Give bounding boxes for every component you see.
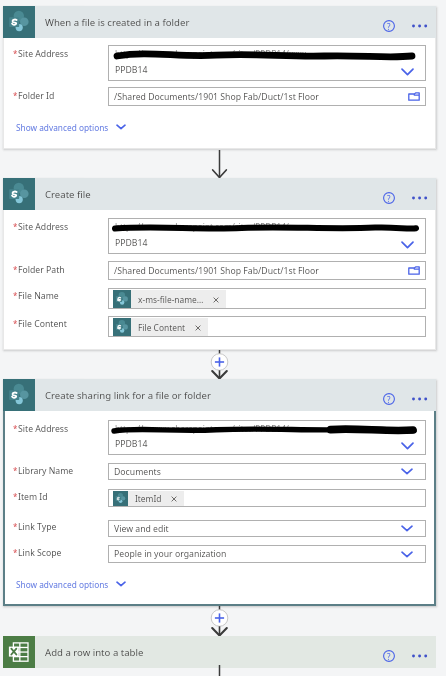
staticText: When a file is created in a folder (45, 16, 190, 29)
staticText: * (13, 48, 18, 59)
button[interactable]: Insert a new step (216, 611, 231, 626)
staticText: Site Address (18, 221, 69, 233)
staticText: x-ms-file-name… (138, 294, 204, 305)
button[interactable]: Help (381, 648, 397, 664)
button[interactable]: When a file is created in a folder (3, 6, 436, 38)
staticText: /Shared Documents/1901 Shop Fab/Duct/1st… (114, 265, 319, 277)
button[interactable]: https://xxxxxx.sharepoint.com/sites/PPDB… (108, 45, 426, 81)
staticText: Site Address (18, 48, 69, 60)
staticText: Link Scope (18, 547, 62, 559)
staticText: PPDB14 (115, 64, 148, 76)
button[interactable]: People in your organization (108, 545, 426, 563)
staticText: https://xxxxxx.sharepoint.com/sites/PPDB… (115, 221, 307, 232)
button[interactable]: Add a row into a table (3, 636, 436, 668)
button[interactable]: https://xxxxxx.sharepoint.com/sites/PPDB… (108, 420, 426, 455)
staticText: * (13, 318, 18, 329)
button[interactable]: Create sharing link for a file or folder (3, 379, 436, 411)
staticText: Folder Path (18, 264, 65, 276)
staticText: ? (387, 193, 391, 204)
staticText: https://xxxxxx.sharepoint.com/sites/PPDB… (115, 423, 307, 434)
staticText: https://xxxxxx.sharepoint.com/sites/PPDB… (115, 48, 307, 59)
staticText: Add a row into a table (45, 646, 144, 659)
button[interactable]: More options (405, 190, 433, 206)
staticText: Folder Id (18, 90, 55, 102)
staticText: Item Id (18, 491, 48, 503)
button[interactable]: https://xxxxxx.sharepoint.com/sites/PPDB… (108, 218, 426, 254)
staticText: Documents (114, 466, 161, 478)
button[interactable]: ItemId (108, 489, 426, 507)
button[interactable]: Documents (108, 463, 426, 480)
staticText: Library Name (18, 465, 74, 477)
staticText: Create sharing link for a file or folder (45, 389, 211, 402)
staticText: * (13, 547, 18, 558)
button[interactable]: Remove (211, 295, 220, 304)
button[interactable]: Insert a new step (216, 355, 231, 370)
staticText: * (13, 423, 18, 434)
staticText: Create file (45, 188, 91, 201)
staticText: View and edit (114, 523, 169, 535)
staticText: /Shared Documents/1901 Shop Fab/Duct/1st… (114, 91, 319, 103)
staticText: ? (387, 394, 391, 405)
staticText: ? (387, 21, 391, 32)
staticText: Site Address (18, 423, 69, 435)
button[interactable]: /Shared Documents/1901 Shop Fab/Duct/1st… (108, 87, 426, 106)
staticText: * (13, 221, 18, 232)
staticText: * (13, 90, 18, 101)
staticText: * (13, 290, 18, 301)
button[interactable]: View and edit (108, 520, 426, 537)
button[interactable]: Help (381, 190, 397, 206)
staticText: * (13, 465, 18, 476)
staticText: * (13, 491, 18, 502)
staticText: File Content (138, 322, 186, 333)
button[interactable]: Show advanced options (16, 119, 126, 135)
staticText: * (13, 264, 18, 275)
staticText: File Content (18, 318, 67, 330)
staticText: * (13, 521, 18, 532)
staticText: Link Type (18, 521, 57, 533)
button[interactable]: Help (381, 391, 397, 407)
button[interactable]: More options (405, 18, 433, 34)
button[interactable]: Create file (3, 178, 436, 210)
staticText: ? (387, 651, 391, 662)
staticText: People in your organization (114, 548, 227, 560)
staticText: Show advanced options (16, 579, 109, 590)
button[interactable]: File Content (108, 316, 426, 337)
button[interactable]: Remove (193, 323, 202, 332)
button[interactable]: More options (405, 391, 433, 407)
button[interactable]: Remove (169, 494, 178, 503)
staticText: File Name (18, 290, 59, 302)
button[interactable]: /Shared Documents/1901 Shop Fab/Duct/1st… (108, 261, 426, 280)
button[interactable]: Show advanced options (16, 576, 126, 592)
button[interactable]: x-ms-file-name… (108, 288, 426, 309)
staticText: PPDB14 (115, 438, 148, 450)
staticText: PPDB14 (115, 237, 148, 249)
button[interactable]: More options (405, 648, 433, 664)
staticText: ItemId (135, 493, 162, 504)
staticText: Show advanced options (16, 122, 109, 133)
button[interactable]: Help (381, 18, 397, 34)
